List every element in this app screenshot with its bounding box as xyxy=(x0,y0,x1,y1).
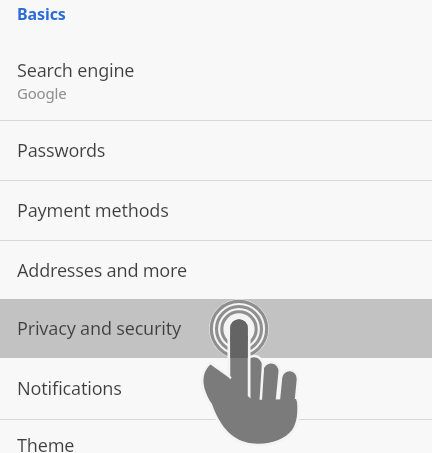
staticText: Passwords xyxy=(17,138,106,163)
button[interactable]: Addresses and more xyxy=(0,241,432,299)
staticText: Basics xyxy=(17,3,66,25)
staticText: Addresses and more xyxy=(17,258,187,283)
staticText: Privacy and security xyxy=(17,316,181,341)
button[interactable]: Passwords xyxy=(0,121,432,180)
button[interactable]: Search engine xyxy=(0,40,432,120)
button[interactable]: Notifications xyxy=(0,358,432,419)
staticText: Payment methods xyxy=(17,198,169,223)
button[interactable]: Theme xyxy=(0,420,432,453)
button[interactable]: Privacy and security xyxy=(0,299,432,358)
staticText: Google xyxy=(17,83,67,103)
staticText: Search engine xyxy=(17,58,135,83)
staticText: Notifications xyxy=(17,376,122,401)
staticText: Theme xyxy=(17,433,75,453)
button[interactable]: Payment methods xyxy=(0,181,432,240)
